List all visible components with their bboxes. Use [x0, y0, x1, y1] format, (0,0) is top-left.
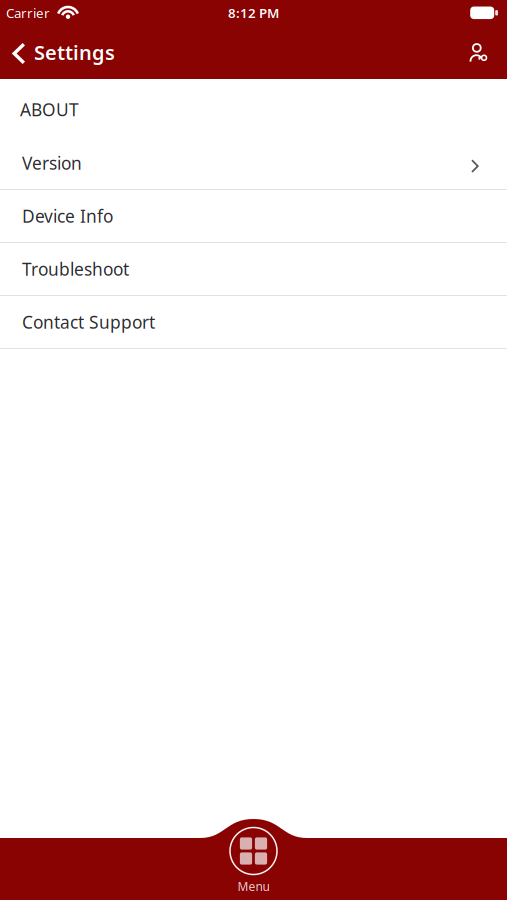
staticText: Carrier — [6, 4, 50, 22]
staticText: 8:12 PM — [228, 4, 279, 22]
staticText: Menu — [237, 878, 269, 894]
button[interactable]: Account — [468, 42, 507, 64]
staticText: Contact Support — [22, 310, 155, 333]
button[interactable]: Device Info — [0, 190, 507, 243]
button[interactable]: Menu — [230, 818, 277, 894]
staticText: Device Info — [22, 204, 113, 227]
button[interactable]: Troubleshoot — [0, 243, 507, 296]
button[interactable]: Back — [0, 40, 115, 67]
button[interactable]: Version — [0, 137, 507, 190]
button[interactable]: Contact Support — [0, 296, 507, 349]
staticText: ABOUT — [20, 98, 79, 121]
staticText: Version — [22, 151, 82, 174]
staticText: Troubleshoot — [22, 257, 129, 280]
staticText: Settings — [34, 39, 115, 66]
